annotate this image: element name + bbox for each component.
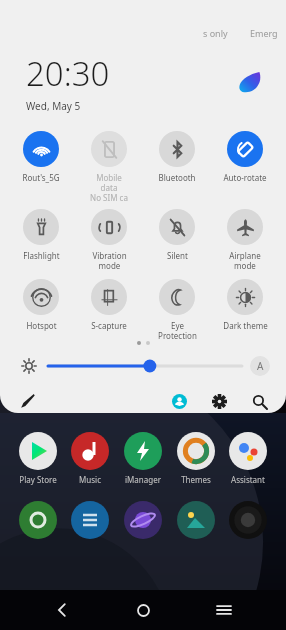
button[interactable]: Home <box>124 591 162 629</box>
staticText: Vibration mode <box>92 250 127 271</box>
staticText: Play Store <box>19 474 57 485</box>
staticText: Wed, May 5 <box>26 99 81 113</box>
staticText: Auto-rotate <box>223 172 267 183</box>
staticText: Mobile data No SIM ca <box>90 172 128 203</box>
button[interactable]: Bluetooth <box>144 131 210 183</box>
button[interactable] <box>48 355 242 377</box>
staticText: 20:30 <box>26 51 110 96</box>
button[interactable]: Play Store <box>13 432 63 485</box>
button[interactable]: Eye Protection <box>144 279 210 341</box>
staticText: s only <box>203 27 228 39</box>
button[interactable]: Music <box>65 432 115 485</box>
button[interactable]: Brightness <box>16 353 42 379</box>
button[interactable]: iManager <box>118 432 168 485</box>
button[interactable]: Dark theme <box>212 279 278 331</box>
button[interactable]: Flashlight <box>8 209 74 261</box>
button[interactable]: Hotspot <box>8 279 74 331</box>
button[interactable]: Airplane mode <box>212 209 278 271</box>
staticText: Rout's_5G <box>22 172 60 183</box>
staticText: Music <box>79 474 101 485</box>
button[interactable]: Auto brightness <box>250 356 270 376</box>
staticText: Hotspot <box>26 320 57 331</box>
button[interactable]: Edit <box>14 389 40 413</box>
staticText: Bluetooth <box>158 172 196 183</box>
staticText: Eye Protection <box>158 320 197 341</box>
staticText: Flashlight <box>23 250 60 261</box>
button[interactable]: Settings <box>206 389 232 413</box>
button[interactable]: Silent <box>144 209 210 261</box>
button[interactable] <box>171 501 221 539</box>
staticText: Emerg <box>250 27 278 39</box>
staticText: Themes <box>181 474 211 485</box>
button[interactable]: Vibration mode <box>76 209 142 271</box>
button[interactable]: Back <box>43 591 81 629</box>
staticText: iManager <box>125 474 161 485</box>
button[interactable]: Search <box>246 389 272 413</box>
button[interactable]: Themes <box>171 432 221 485</box>
button[interactable]: Mobile data No SIM ca <box>76 131 142 203</box>
button[interactable]: Recents <box>205 591 243 629</box>
button[interactable] <box>118 501 168 539</box>
staticText: Assistant <box>231 474 265 485</box>
staticText: S-capture <box>91 320 127 331</box>
button[interactable]: Assistant <box>223 432 273 485</box>
button[interactable]: S-capture <box>76 279 142 331</box>
button[interactable] <box>65 501 115 539</box>
staticText: A <box>257 359 264 373</box>
button[interactable]: Assistant <box>234 67 264 97</box>
button[interactable]: Auto-rotate <box>212 131 278 183</box>
staticText: Dark theme <box>223 320 268 331</box>
button[interactable]: User <box>166 389 192 413</box>
button[interactable]: Rout's_5G <box>8 131 74 183</box>
button[interactable] <box>223 501 273 539</box>
button[interactable] <box>13 501 63 539</box>
staticText: Silent <box>167 250 188 261</box>
staticText: Airplane mode <box>229 250 261 271</box>
